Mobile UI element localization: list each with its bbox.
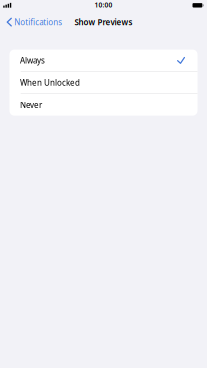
staticText: Show Previews xyxy=(74,17,132,27)
button[interactable]: Never xyxy=(9,94,197,116)
button[interactable]: When Unlocked xyxy=(9,72,197,93)
staticText: Notifications xyxy=(14,17,62,27)
staticText: When Unlocked xyxy=(20,77,80,88)
staticText: 10:00 xyxy=(94,1,112,9)
button[interactable]: Always xyxy=(9,50,197,71)
staticText: Always xyxy=(20,55,45,66)
button[interactable]: Notifications xyxy=(0,14,66,30)
staticText: Never xyxy=(20,99,42,110)
